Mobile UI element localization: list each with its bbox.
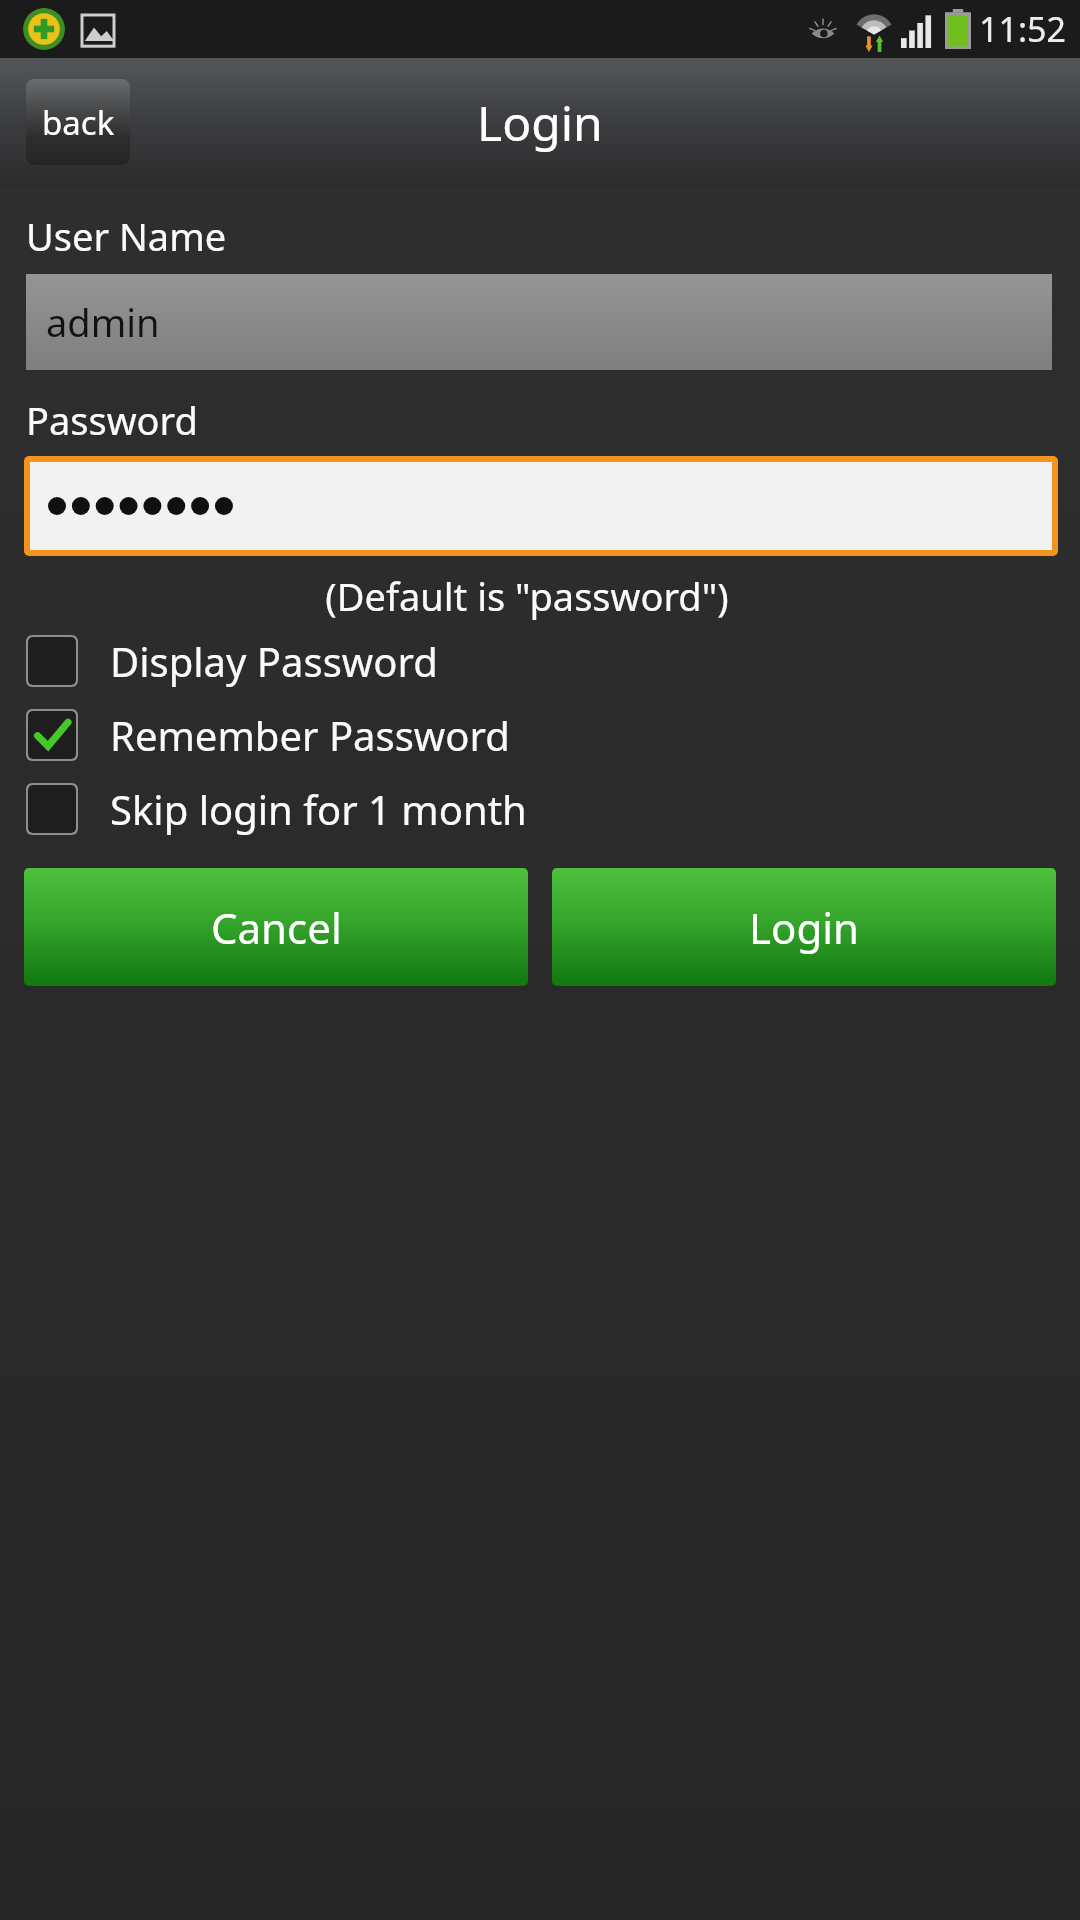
staticText: Login <box>477 90 603 155</box>
button[interactable]: admin <box>26 274 1052 370</box>
staticText: Login <box>749 899 860 956</box>
button[interactable]: back <box>26 79 130 165</box>
button[interactable] <box>30 462 1052 550</box>
staticText: Skip login for 1 month <box>110 782 527 836</box>
button[interactable]: Login <box>552 868 1056 986</box>
staticText: Remember Password <box>110 708 510 762</box>
staticText: (Default is "password") <box>0 570 1054 622</box>
staticText: back <box>42 100 115 145</box>
staticText: Password <box>26 394 198 446</box>
staticText: User Name <box>26 210 227 262</box>
staticText: 11:52 <box>979 6 1066 52</box>
button[interactable]: Cancel <box>24 868 528 986</box>
button[interactable]: Remember Password <box>0 708 1080 762</box>
button[interactable]: Skip login for 1 month <box>0 782 1080 836</box>
staticText: Display Password <box>110 634 438 688</box>
staticText: Cancel <box>211 899 342 956</box>
staticText: admin <box>46 296 160 348</box>
button[interactable]: Display Password <box>0 634 1080 688</box>
